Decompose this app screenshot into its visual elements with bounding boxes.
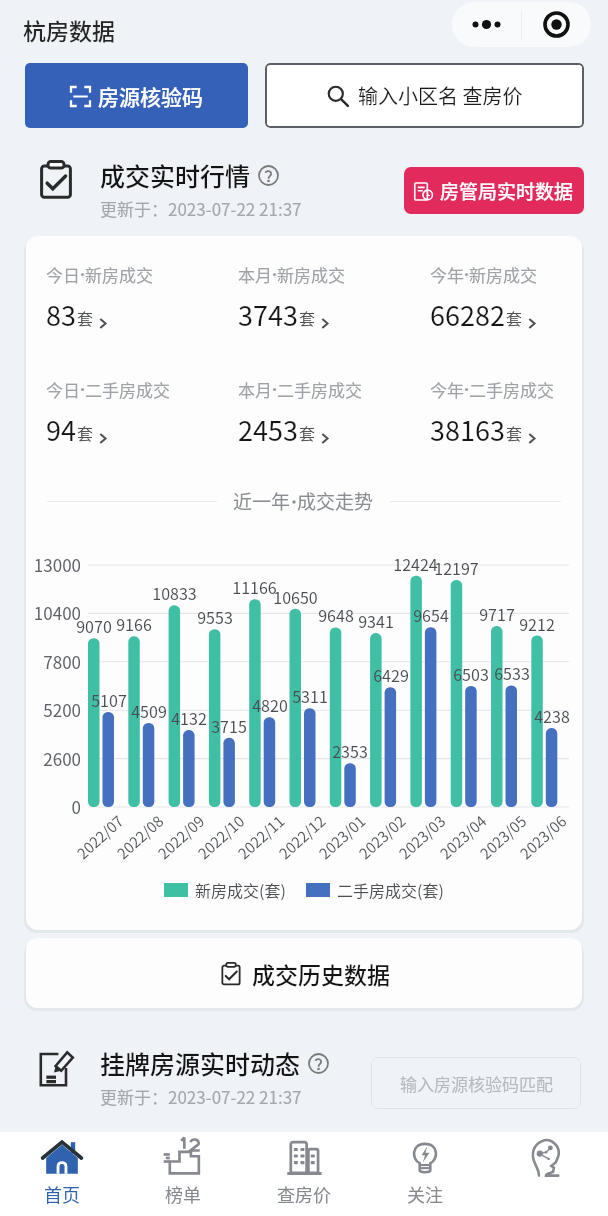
staticText: 榜单	[165, 1181, 201, 1207]
staticText: 套	[506, 421, 523, 444]
staticText: 套	[299, 421, 316, 444]
staticText: 今日	[46, 262, 80, 287]
staticText: 套	[506, 306, 523, 329]
button[interactable]: 今日	[46, 262, 226, 334]
staticText: 今年	[430, 262, 464, 287]
button[interactable]: 成交历史数据	[26, 938, 582, 1008]
staticText: 11166	[232, 575, 277, 598]
staticText: 5107	[91, 688, 127, 711]
staticText: 2022/09	[153, 810, 209, 864]
staticText: 首页	[44, 1181, 80, 1207]
staticText: 3715	[211, 714, 247, 737]
staticText: 成交历史数据	[252, 957, 390, 990]
staticText: 本月	[238, 262, 272, 287]
staticText: 杭房数据	[23, 13, 115, 46]
staticText: 2023/06	[515, 810, 571, 864]
staticText: 10400	[33, 600, 81, 625]
staticText: 0	[71, 794, 81, 819]
staticText: 2023/03	[394, 810, 450, 864]
staticText: 2022/08	[112, 810, 168, 864]
staticText: 输入房源核验码匹配	[400, 1071, 553, 1096]
button[interactable]: AI 助手	[507, 1132, 585, 1216]
staticText: 二手房成交	[85, 377, 170, 402]
staticText: 13000	[33, 552, 81, 577]
staticText: 更新于：2023-07-22 21:37	[100, 1084, 302, 1109]
staticText: 2023/05	[475, 810, 531, 864]
button[interactable]: Close	[522, 2, 591, 47]
staticText: 2023/02	[354, 810, 410, 864]
staticText: 12424	[393, 552, 438, 575]
staticText: 6429	[373, 663, 409, 686]
staticText: 9648	[318, 603, 354, 626]
staticText: 关注	[407, 1181, 443, 1207]
staticText: 7800	[43, 649, 81, 674]
staticText: 二手房成交	[469, 377, 554, 402]
staticText: 成交实时行情	[100, 157, 251, 193]
staticText: 输入小区名 查房价	[358, 81, 523, 110]
staticText: 新房成交	[277, 262, 345, 287]
staticText: 今年	[430, 377, 464, 402]
staticText: 新房成交	[85, 262, 153, 287]
staticText: 9341	[358, 609, 394, 632]
staticText: 5311	[292, 684, 328, 707]
button[interactable]: 首页	[23, 1132, 101, 1216]
staticText: 94	[46, 410, 76, 449]
staticText: 2600	[43, 746, 81, 771]
staticText: 9166	[116, 612, 152, 635]
staticText: 6503	[453, 662, 489, 685]
staticText: 查房价	[277, 1181, 331, 1207]
staticText: 4509	[131, 699, 167, 722]
staticText: 二手房成交(套)	[337, 878, 444, 901]
staticText: 38163	[430, 410, 505, 449]
staticText: 4238	[534, 704, 570, 727]
button[interactable]: 今年	[430, 262, 582, 334]
staticText: 今日	[46, 377, 80, 402]
button[interactable]: 今日	[46, 377, 226, 449]
staticText: 2022/11	[233, 810, 289, 864]
staticText: 房管局实时数据	[440, 177, 574, 205]
staticText: 2353	[332, 739, 368, 762]
button[interactable]: 输入房源核验码匹配	[371, 1057, 581, 1109]
button[interactable]: 查房价	[265, 1132, 343, 1216]
button[interactable]: 本月	[238, 377, 418, 449]
staticText: 二手房成交	[277, 377, 362, 402]
staticText: 成交走势	[297, 487, 374, 515]
staticText: 2022/07	[72, 810, 128, 864]
staticText: 83	[46, 295, 76, 334]
staticText: 近一年	[233, 487, 291, 515]
staticText: 2022/12	[274, 810, 330, 864]
staticText: 房源核验码	[98, 81, 203, 111]
button[interactable]: 房管局实时数据	[404, 167, 584, 214]
staticText: 4132	[171, 706, 207, 729]
button[interactable]: 本月	[238, 262, 418, 334]
staticText: 5200	[43, 697, 81, 722]
staticText: 2023/04	[435, 810, 491, 864]
staticText: 本月	[238, 377, 272, 402]
staticText: 套	[77, 421, 94, 444]
staticText: 更新于：2023-07-22 21:37	[100, 196, 302, 221]
button[interactable]: More	[452, 2, 521, 47]
staticText: 新房成交	[469, 262, 537, 287]
button[interactable]: 输入小区名 查房价	[265, 63, 584, 128]
staticText: 9070	[76, 614, 112, 637]
staticText: 新房成交(套)	[195, 878, 286, 901]
staticText: 12197	[434, 556, 479, 579]
staticText: 66282	[430, 295, 505, 334]
staticText: 2023/01	[314, 810, 370, 864]
button[interactable]: 房源核验码	[25, 63, 248, 128]
staticText: 挂牌房源实时动态	[100, 1045, 301, 1081]
staticText: 2453	[238, 410, 298, 449]
staticText: 2022/10	[193, 810, 249, 864]
staticText: 10650	[273, 585, 318, 608]
staticText: 9717	[479, 602, 515, 625]
button[interactable]: 榜单	[144, 1132, 222, 1216]
staticText: 9212	[519, 612, 555, 635]
staticText: 9553	[197, 605, 233, 628]
staticText: 6533	[494, 661, 530, 684]
staticText: 4820	[252, 693, 288, 716]
button[interactable]: 关注	[386, 1132, 464, 1216]
staticText: 套	[299, 306, 316, 329]
button[interactable]: 今年	[430, 377, 582, 449]
staticText: 套	[77, 306, 94, 329]
staticText: 9654	[413, 603, 449, 626]
